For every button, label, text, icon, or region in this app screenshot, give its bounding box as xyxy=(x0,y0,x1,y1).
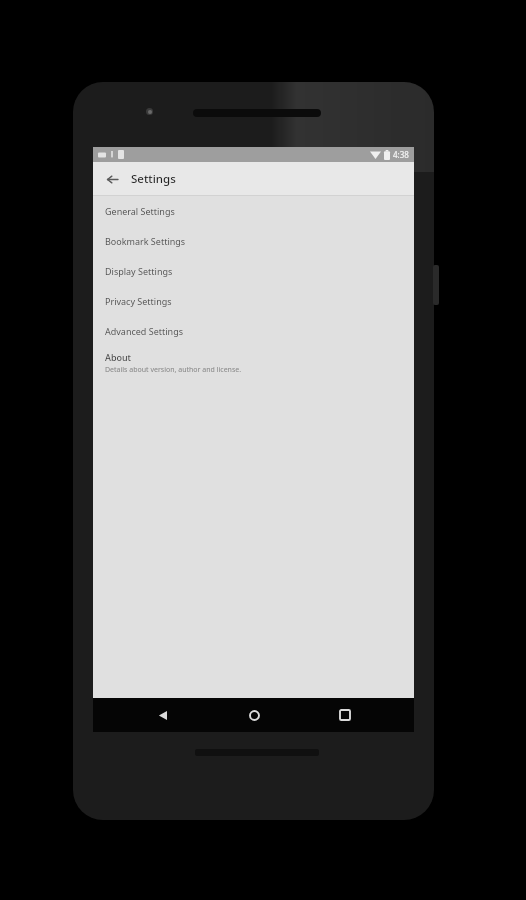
button[interactable]: Back xyxy=(148,700,178,730)
staticText: Settings xyxy=(131,171,176,187)
button[interactable]: Recent apps xyxy=(330,700,360,730)
staticText: 4:38 xyxy=(393,149,409,160)
staticText: General Settings xyxy=(105,205,175,217)
button[interactable]: General Settings xyxy=(93,196,414,226)
button[interactable]: Display Settings xyxy=(93,256,414,286)
button[interactable]: Bookmark Settings xyxy=(93,226,414,256)
staticText: Advanced Settings xyxy=(105,325,183,337)
button[interactable]: About xyxy=(93,346,414,380)
staticText: Bookmark Settings xyxy=(105,235,186,247)
staticText: Details about version, author and licens… xyxy=(105,365,242,375)
button[interactable]: Privacy Settings xyxy=(93,286,414,316)
staticText: Display Settings xyxy=(105,265,173,277)
button[interactable]: Advanced Settings xyxy=(93,316,414,346)
button[interactable]: Back xyxy=(99,166,125,192)
staticText: Privacy Settings xyxy=(105,295,172,307)
button[interactable]: Home xyxy=(239,700,269,730)
staticText: About xyxy=(105,351,132,363)
